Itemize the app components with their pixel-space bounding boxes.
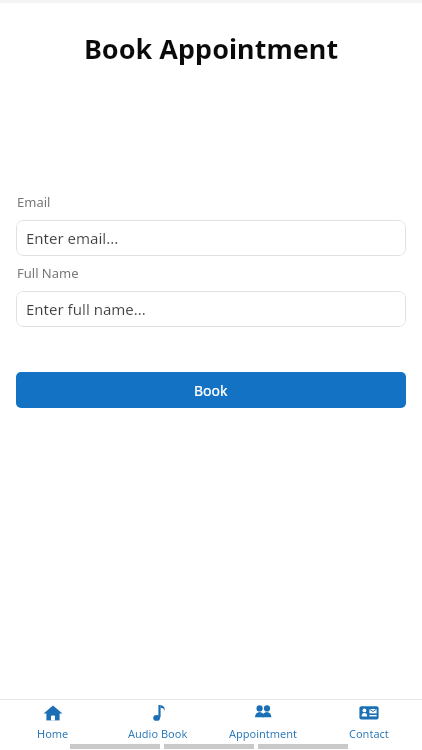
button[interactable]: Audio Book xyxy=(105,700,210,744)
staticText: Home xyxy=(37,726,69,741)
staticText: Appointment xyxy=(229,726,298,741)
button[interactable]: Home xyxy=(0,700,105,744)
staticText: Email xyxy=(17,193,51,211)
button[interactable]: Enter email... xyxy=(16,220,406,256)
staticText: Book xyxy=(194,381,228,400)
button[interactable]: Enter full name... xyxy=(16,291,406,327)
staticText: Audio Book xyxy=(128,726,188,741)
staticText: Book Appointment xyxy=(0,30,422,67)
staticText: Enter full name... xyxy=(26,299,146,319)
staticText: Contact xyxy=(349,726,389,741)
staticText: Full Name xyxy=(17,264,79,282)
staticText: Enter email... xyxy=(26,228,119,248)
button[interactable]: Contact xyxy=(316,700,422,744)
button[interactable]: Appointment xyxy=(210,700,316,744)
button[interactable]: Book xyxy=(16,372,406,408)
